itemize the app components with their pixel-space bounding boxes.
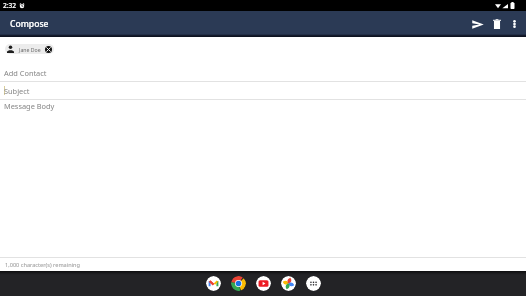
button[interactable]: Chrome (231, 276, 246, 291)
staticText: 2:32 (3, 1, 17, 10)
button[interactable]: Photos (281, 276, 296, 291)
staticText: Message Body (4, 101, 55, 111)
button[interactable]: Send (467, 13, 488, 35)
staticText: Compose (10, 18, 49, 30)
staticText: Subject (4, 86, 30, 96)
button[interactable]: Jane Doe (5, 44, 54, 54)
button[interactable]: More options (506, 13, 522, 35)
button[interactable]: Gmail (206, 276, 221, 291)
button[interactable]: YouTube (256, 276, 271, 291)
button[interactable]: All apps (306, 276, 321, 291)
other: Remove recipient (45, 46, 52, 53)
staticText: 1,000 character(s) remaining (5, 261, 80, 269)
staticText: Jane Doe (19, 46, 41, 53)
staticText: Add Contact (4, 68, 47, 78)
button[interactable]: Delete (487, 13, 506, 35)
